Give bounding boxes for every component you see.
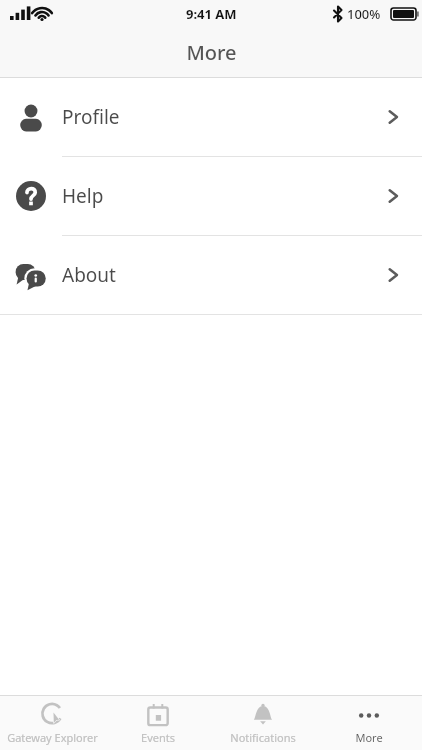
- staticText: Profile: [62, 104, 120, 130]
- staticText: Events: [141, 730, 175, 745]
- button[interactable]: Notifications: [210, 696, 316, 750]
- staticText: More: [355, 730, 383, 745]
- other: Gateway Explorer: [41, 703, 65, 727]
- other: Events: [147, 704, 169, 726]
- staticText: 100%: [347, 5, 381, 23]
- button[interactable]: Help: [0, 157, 422, 235]
- staticText: More: [186, 39, 237, 66]
- button[interactable]: Gateway Explorer: [0, 696, 105, 750]
- button[interactable]: Events: [105, 696, 210, 750]
- button[interactable]: About: [0, 236, 422, 314]
- staticText: 9:41 AM: [186, 5, 237, 23]
- staticText: Help: [62, 183, 104, 209]
- button[interactable]: More: [316, 696, 422, 750]
- other: Notifications: [251, 703, 275, 727]
- staticText: About: [62, 262, 116, 288]
- other: More: [356, 702, 382, 728]
- staticText: Notifications: [230, 730, 296, 745]
- staticText: Gateway Explorer: [7, 730, 98, 745]
- button[interactable]: Profile: [0, 78, 422, 156]
